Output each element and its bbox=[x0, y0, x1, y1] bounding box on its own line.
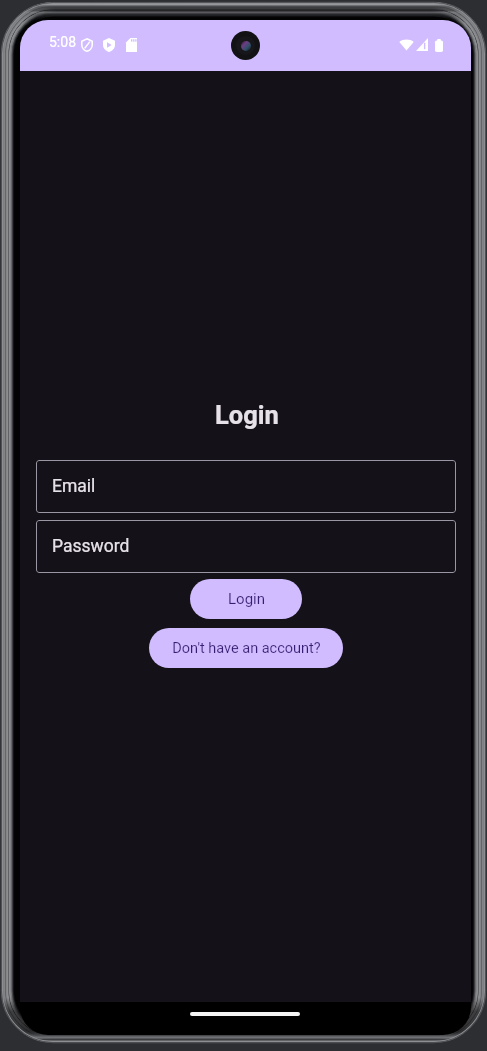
button[interactable]: Password bbox=[36, 520, 456, 573]
staticText: Email bbox=[52, 476, 96, 497]
staticText: 5:08 bbox=[49, 34, 76, 50]
staticText: Login bbox=[228, 590, 265, 608]
staticText: Login bbox=[215, 400, 279, 430]
staticText: Don't have an account? bbox=[172, 640, 321, 657]
button[interactable]: Login bbox=[190, 579, 302, 619]
button[interactable]: Email bbox=[36, 460, 456, 513]
staticText: Password bbox=[52, 536, 130, 557]
button[interactable]: Don't have an account? bbox=[149, 628, 343, 668]
